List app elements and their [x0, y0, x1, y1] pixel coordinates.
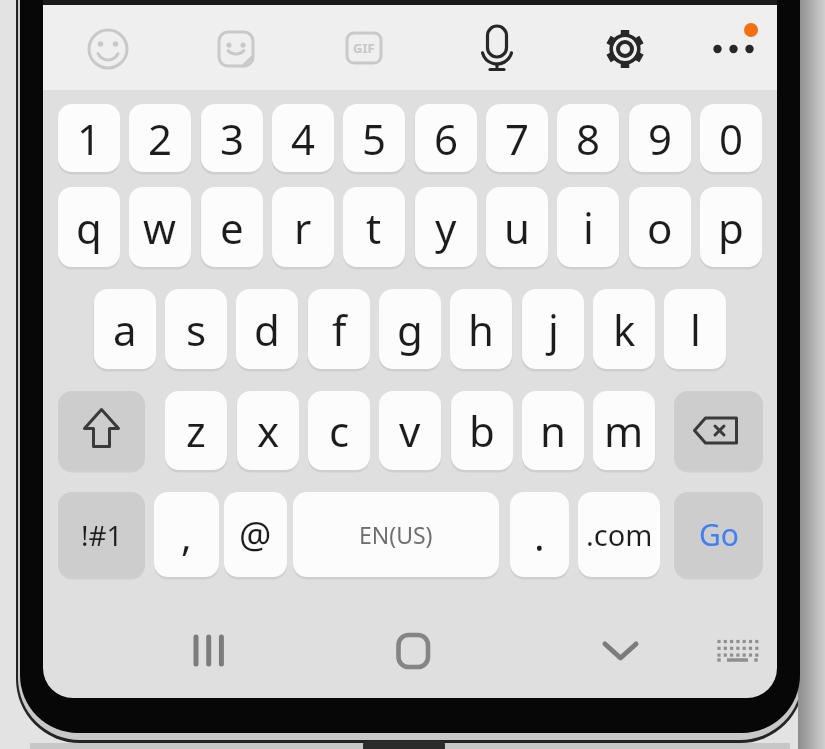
button[interactable] [336, 20, 392, 76]
button[interactable] [469, 19, 525, 75]
staticText: o [647, 199, 673, 256]
button[interactable]: v [379, 391, 441, 470]
staticText: z [186, 402, 206, 459]
button[interactable]: j [522, 289, 584, 369]
button[interactable]: @ [224, 492, 287, 577]
staticText: h [468, 301, 494, 358]
button[interactable]: 3 [201, 104, 263, 172]
button[interactable] [58, 391, 145, 470]
staticText: q [76, 199, 102, 256]
button[interactable]: g [379, 289, 441, 369]
staticText: g [397, 301, 423, 358]
staticText: w [143, 199, 177, 256]
button[interactable]: w [129, 187, 191, 267]
button[interactable]: . [510, 492, 569, 577]
staticText: 6 [434, 110, 459, 167]
staticText: 7 [505, 110, 530, 167]
button[interactable]: x [237, 391, 299, 470]
staticText: k [613, 301, 636, 358]
staticText: j [548, 301, 559, 358]
button[interactable]: i [557, 187, 619, 267]
button[interactable] [80, 21, 136, 77]
button[interactable]: EN(US) [293, 492, 499, 577]
button[interactable]: c [308, 391, 370, 470]
button[interactable]: 0 [700, 104, 762, 172]
button[interactable]: b [451, 391, 513, 470]
button[interactable]: f [308, 289, 370, 369]
button[interactable]: q [58, 187, 120, 267]
button[interactable]: 8 [557, 104, 619, 172]
staticText: , [181, 508, 192, 562]
button[interactable]: u [486, 187, 548, 267]
button[interactable] [707, 624, 767, 676]
staticText: a [113, 301, 137, 358]
staticText: u [504, 199, 530, 256]
staticText: f [332, 301, 347, 358]
button[interactable]: Go [674, 492, 763, 577]
staticText: EN(US) [359, 519, 433, 550]
button[interactable]: r [272, 187, 334, 267]
staticText: Go [699, 514, 739, 555]
staticText: 9 [648, 110, 673, 167]
staticText: 4 [291, 110, 316, 167]
button[interactable] [383, 624, 443, 676]
button[interactable]: , [154, 492, 219, 577]
button[interactable]: 7 [486, 104, 548, 172]
button[interactable] [591, 624, 651, 676]
staticText: 2 [148, 110, 173, 167]
button[interactable]: o [629, 187, 691, 267]
button[interactable]: !#1 [58, 492, 145, 577]
button[interactable]: l [664, 289, 726, 369]
button[interactable]: k [593, 289, 655, 369]
staticText: 8 [576, 110, 601, 167]
button[interactable] [674, 391, 763, 470]
staticText: GIF [353, 39, 375, 57]
staticText: d [254, 301, 280, 358]
staticText: c [329, 402, 350, 459]
staticText: s [186, 301, 207, 358]
button[interactable] [705, 21, 761, 77]
button[interactable]: 4 [272, 104, 334, 172]
button[interactable]: z [165, 391, 227, 470]
staticText: p [718, 199, 744, 256]
button[interactable]: s [165, 289, 227, 369]
staticText: l [690, 301, 701, 358]
button[interactable] [208, 21, 264, 77]
button[interactable]: p [700, 187, 762, 267]
button[interactable]: a [94, 289, 156, 369]
button[interactable]: h [450, 289, 512, 369]
button[interactable]: 9 [629, 104, 691, 172]
button[interactable] [178, 624, 238, 676]
staticText: n [540, 402, 566, 459]
button[interactable] [597, 21, 653, 77]
staticText: b [469, 402, 495, 459]
staticText: v [399, 402, 421, 459]
button[interactable]: n [522, 391, 584, 470]
staticText: t [366, 199, 382, 256]
button[interactable]: 2 [129, 104, 191, 172]
staticText: x [257, 402, 280, 459]
staticText: .com [586, 515, 653, 554]
button[interactable]: t [343, 187, 405, 267]
button[interactable]: .com [578, 492, 660, 577]
staticText: m [604, 402, 644, 459]
button[interactable]: 1 [58, 104, 120, 172]
button[interactable]: e [201, 187, 263, 267]
staticText: 1 [77, 110, 102, 167]
staticText: i [583, 199, 594, 256]
staticText: !#1 [81, 516, 123, 554]
staticText: . [534, 508, 545, 562]
button[interactable]: m [593, 391, 655, 470]
staticText: e [220, 199, 244, 256]
button[interactable]: y [415, 187, 477, 267]
staticText: 5 [362, 110, 387, 167]
staticText: @ [239, 510, 272, 559]
button[interactable]: 6 [415, 104, 477, 172]
button[interactable]: d [236, 289, 298, 369]
staticText: 0 [719, 110, 744, 167]
button[interactable]: 5 [343, 104, 405, 172]
staticText: r [294, 199, 312, 256]
staticText: y [435, 199, 457, 256]
staticText: 3 [220, 110, 245, 167]
